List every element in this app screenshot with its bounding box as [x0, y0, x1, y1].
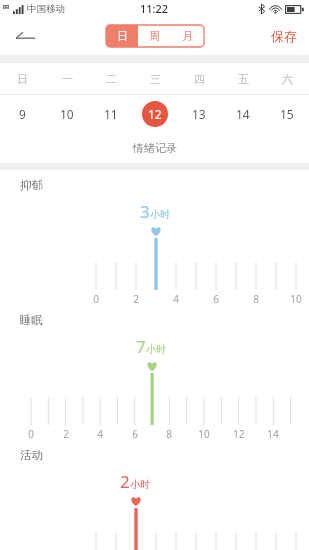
- button[interactable]: 月: [171, 25, 204, 47]
- staticText: 抑郁: [20, 178, 43, 192]
- staticText: 中国移动: [27, 3, 65, 15]
- staticText: 6: [132, 427, 138, 441]
- staticText: 14: [236, 106, 250, 122]
- staticText: 2: [133, 292, 139, 306]
- staticText: 8: [166, 427, 172, 441]
- button[interactable]: 12: [133, 95, 177, 133]
- button[interactable]: 14: [221, 95, 265, 133]
- button[interactable]: 10: [45, 95, 89, 133]
- staticText: 14: [267, 427, 279, 441]
- staticText: 15: [280, 106, 294, 122]
- staticText: 小时: [146, 343, 166, 356]
- staticText: 保存: [271, 28, 297, 44]
- staticText: 0: [28, 427, 34, 441]
- staticText: 五: [238, 72, 249, 86]
- staticText: 3: [140, 200, 150, 223]
- staticText: 小时: [150, 208, 170, 221]
- staticText: 情绪记录: [133, 141, 177, 155]
- staticText: 日: [17, 72, 28, 86]
- staticText: 二: [106, 72, 117, 86]
- staticText: 三: [150, 72, 161, 86]
- button[interactable]: Back: [5, 20, 45, 52]
- button[interactable]: 9: [0, 95, 45, 133]
- staticText: 日: [117, 29, 128, 43]
- staticText: 六: [282, 72, 293, 86]
- staticText: 2: [120, 470, 130, 493]
- staticText: 小时: [130, 478, 150, 491]
- button[interactable]: 保存: [271, 28, 297, 44]
- staticText: 12: [233, 427, 245, 441]
- staticText: 活动: [20, 448, 43, 462]
- staticText: 睡眠: [20, 313, 43, 327]
- button[interactable]: 13: [177, 95, 221, 133]
- staticText: 10: [198, 427, 210, 441]
- button[interactable]: 周: [138, 25, 171, 47]
- button[interactable]: 15: [265, 95, 309, 133]
- staticText: 周: [149, 29, 160, 43]
- staticText: 12: [148, 106, 162, 122]
- staticText: 11: [104, 106, 118, 122]
- staticText: 10: [290, 292, 302, 306]
- button[interactable]: 日: [106, 25, 138, 47]
- staticText: 4: [97, 427, 103, 441]
- staticText: 四: [194, 72, 205, 86]
- staticText: 11:22: [140, 1, 169, 16]
- staticText: 4: [173, 292, 179, 306]
- staticText: 0: [93, 292, 99, 306]
- staticText: 2: [63, 427, 69, 441]
- button[interactable]: 11: [89, 95, 133, 133]
- staticText: 6: [213, 292, 219, 306]
- staticText: 7: [136, 335, 146, 358]
- staticText: 13: [192, 106, 206, 122]
- staticText: 一: [62, 72, 73, 86]
- staticText: 月: [182, 29, 193, 43]
- staticText: 9: [19, 106, 26, 122]
- staticText: 8: [253, 292, 259, 306]
- staticText: 10: [60, 106, 74, 122]
